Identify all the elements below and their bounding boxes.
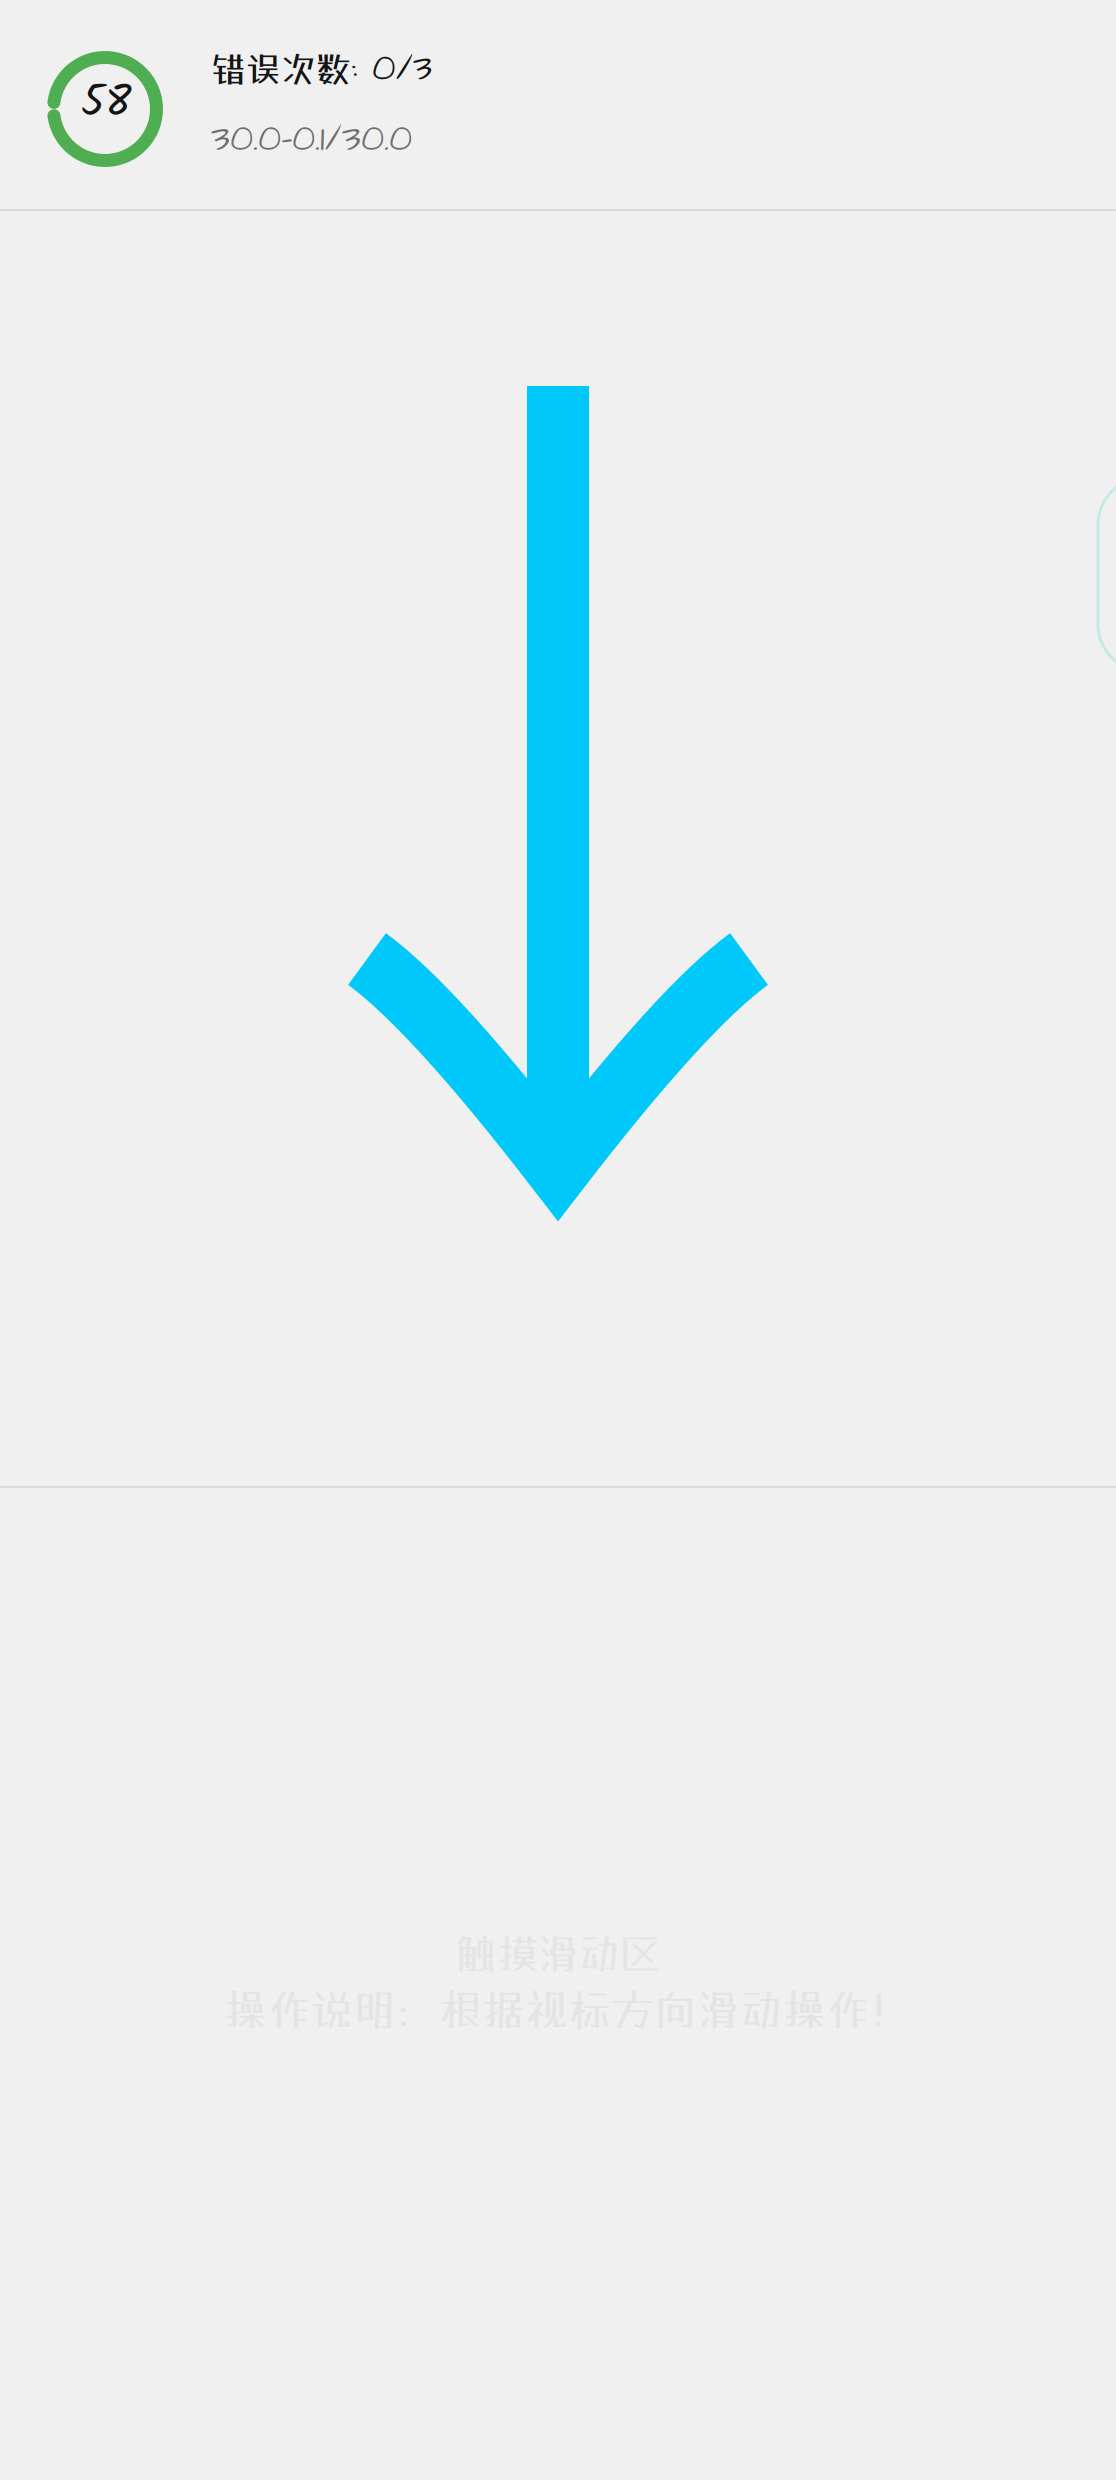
staticText: 错误次数	[211, 48, 351, 89]
staticText: 30.0-0.1/30.0	[211, 114, 412, 165]
staticText: : 0/3	[351, 43, 432, 95]
staticText: 触摸滑动区	[455, 1929, 660, 1978]
staticText: 操作说明：根据视标方向滑动操作！	[224, 1984, 912, 2034]
staticText: 58	[81, 69, 131, 139]
